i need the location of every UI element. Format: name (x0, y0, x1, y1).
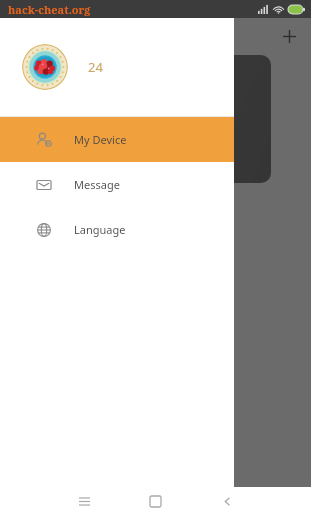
button[interactable]: Language (0, 207, 234, 252)
button[interactable]: Video message (26, 198, 56, 228)
staticText: 24 (88, 58, 103, 76)
staticText: hack-cheat.org (8, 2, 91, 17)
button[interactable]: Back (205, 487, 249, 516)
button[interactable]: Recents (62, 487, 106, 516)
button[interactable]: Message (0, 162, 234, 207)
staticText: My Device (74, 132, 127, 147)
button[interactable]: Add (275, 22, 303, 50)
staticText: Message (74, 177, 120, 192)
button[interactable]: Home (133, 487, 177, 516)
button[interactable] (0, 55, 271, 183)
button[interactable]: My Device (0, 117, 234, 162)
staticText: Language (74, 222, 126, 237)
button[interactable]: 24 (0, 18, 234, 116)
